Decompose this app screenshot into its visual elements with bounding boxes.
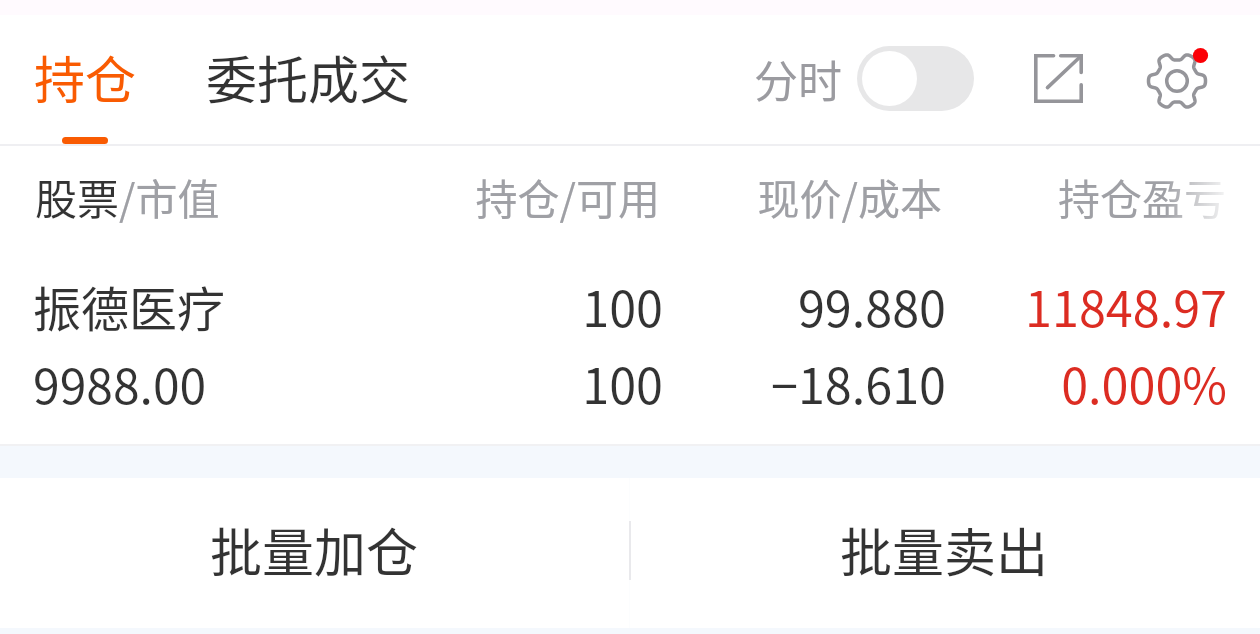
staticText: 现价/成本 — [542, 166, 942, 227]
button[interactable]: Settings — [1137, 41, 1217, 121]
staticText: 持仓/可用 — [260, 166, 660, 227]
staticText: 100 — [263, 271, 663, 341]
staticText: 分时 — [754, 47, 842, 111]
staticText: 批量卖出 — [840, 512, 1049, 587]
staticText: 持仓 — [34, 40, 137, 114]
staticText: 99.880 — [546, 271, 946, 341]
button[interactable]: 批量加仓 — [0, 474, 629, 624]
staticText: 委托成交 — [206, 40, 411, 114]
button[interactable]: 分时 — [738, 30, 990, 127]
staticText: 100 — [263, 348, 663, 418]
button[interactable]: 批量卖出 — [629, 474, 1260, 624]
staticText: −18.610 — [546, 348, 946, 418]
staticText: 9988.00 — [33, 348, 207, 418]
staticText: 持仓盈亏 — [1058, 166, 1227, 227]
staticText: 11848.97 — [827, 271, 1227, 341]
staticText: 股票/市值 — [35, 166, 220, 227]
staticText: 振德医疗 — [33, 271, 226, 341]
button[interactable]: 委托成交 — [190, 24, 427, 130]
staticText: 批量加仓 — [210, 512, 419, 587]
button[interactable]: 持仓 — [18, 24, 153, 130]
button[interactable]: 振德医疗 — [0, 250, 1260, 444]
button[interactable]: Share — [1022, 42, 1094, 114]
staticText: 0.000% — [827, 348, 1227, 418]
